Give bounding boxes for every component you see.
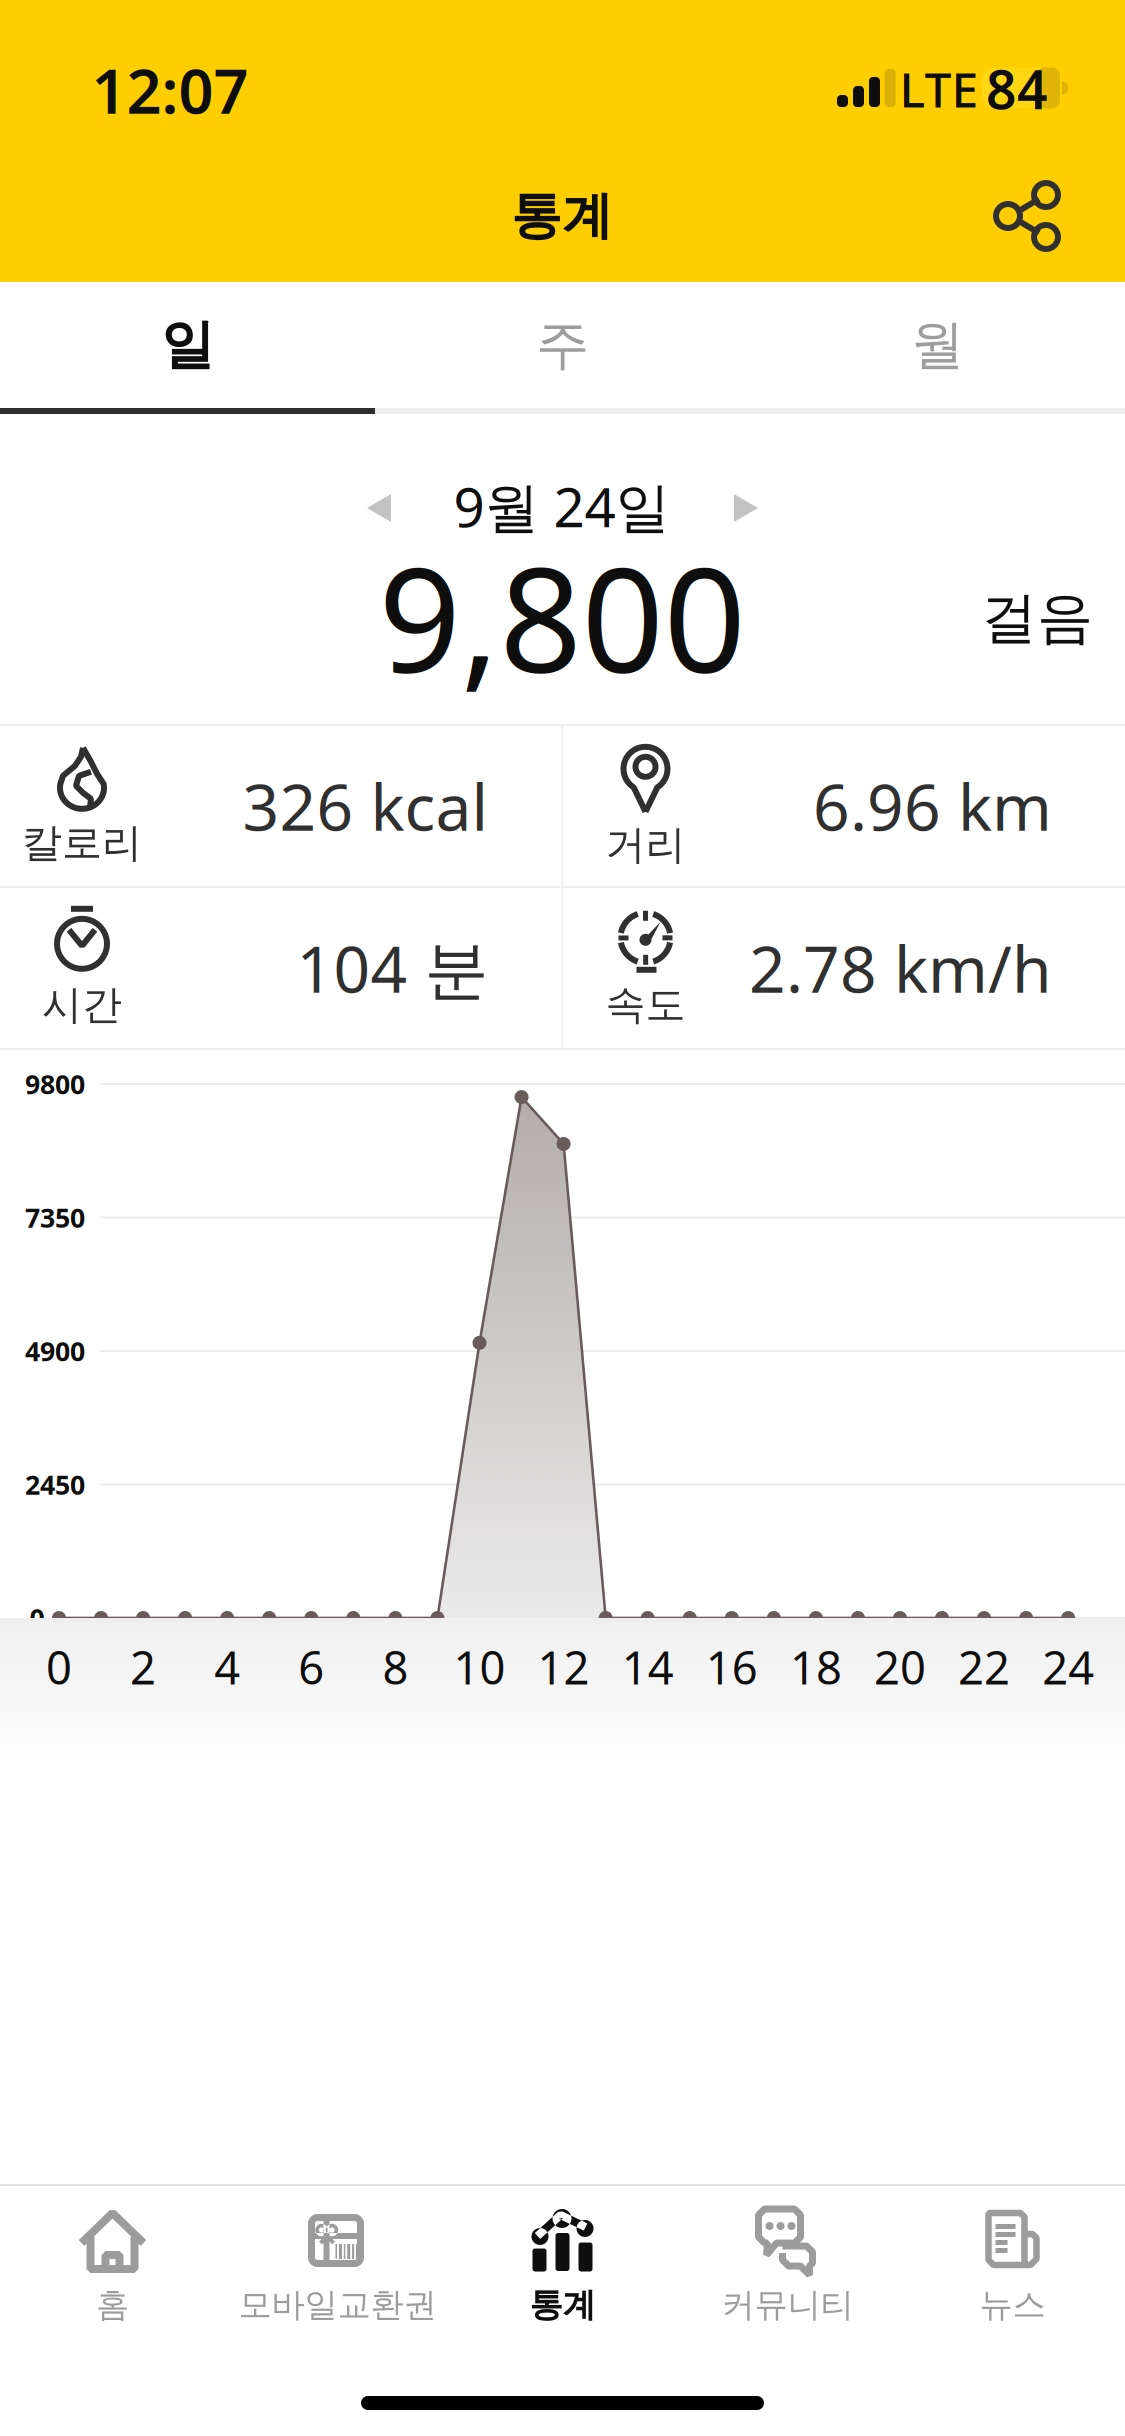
staticText: 거리 [605,820,685,870]
staticText: 주 [536,311,589,379]
button[interactable]: 모바일교환권 [225,2186,450,2350]
staticText: 2 [130,1636,156,1698]
staticText: 홈 [96,2284,129,2326]
staticText: 월 [911,311,964,379]
staticText: 84 [986,52,1048,125]
staticText: 모바일교환권 [238,2284,436,2326]
staticText: 뉴스 [979,2284,1045,2326]
staticText: 2450 [25,1466,85,1503]
staticText: 0 [46,1636,72,1698]
staticText: 4 [214,1636,240,1698]
staticText: 18 [790,1636,842,1698]
staticText: 16 [706,1636,758,1698]
staticText: 커뮤니티 [721,2284,853,2326]
staticText: 20 [874,1636,926,1698]
staticText: 9800 [25,1066,85,1102]
button[interactable]: 일 [0,282,375,408]
staticText: 10 [453,1636,505,1698]
button[interactable]: 커뮤니티 [675,2186,900,2350]
staticText: 시간 [42,980,122,1030]
staticText: 24 [1042,1636,1094,1698]
staticText: 8 [382,1636,408,1698]
staticText: 일 [161,311,214,379]
staticText: 326 kcal [242,762,488,850]
staticText: 통계 [511,184,613,248]
button[interactable]: 통계 [450,2186,675,2350]
staticText: 22 [958,1636,1010,1698]
staticText: 6 [298,1636,324,1698]
staticText: 4900 [25,1333,85,1369]
button[interactable]: 월 [750,282,1125,408]
button[interactable]: 뉴스 [900,2186,1125,2350]
staticText: 14 [622,1636,674,1698]
button[interactable]: Next day [734,494,758,522]
staticText: 0 [29,1600,44,1636]
staticText: 칼로리 [22,818,142,868]
staticText: 6.96 km [813,762,1052,850]
staticText: 9,800 [378,519,745,715]
staticText: LTE [899,56,978,122]
staticText: 12 [538,1636,590,1698]
staticText: 7350 [25,1199,85,1236]
button[interactable]: Previous day [367,494,391,522]
button[interactable]: 주 [375,282,750,408]
staticText: 속도 [605,980,685,1030]
staticText: 2.78 km/h [749,924,1052,1012]
button[interactable]: Share [993,182,1061,250]
staticText: 9월 24일 [453,469,670,543]
staticText: 104 분 [296,924,488,1012]
staticText: 12:07 [91,48,248,132]
staticText: 통계 [529,2284,595,2326]
button[interactable]: 홈 [0,2186,225,2350]
staticText: 걸음 [981,583,1093,653]
